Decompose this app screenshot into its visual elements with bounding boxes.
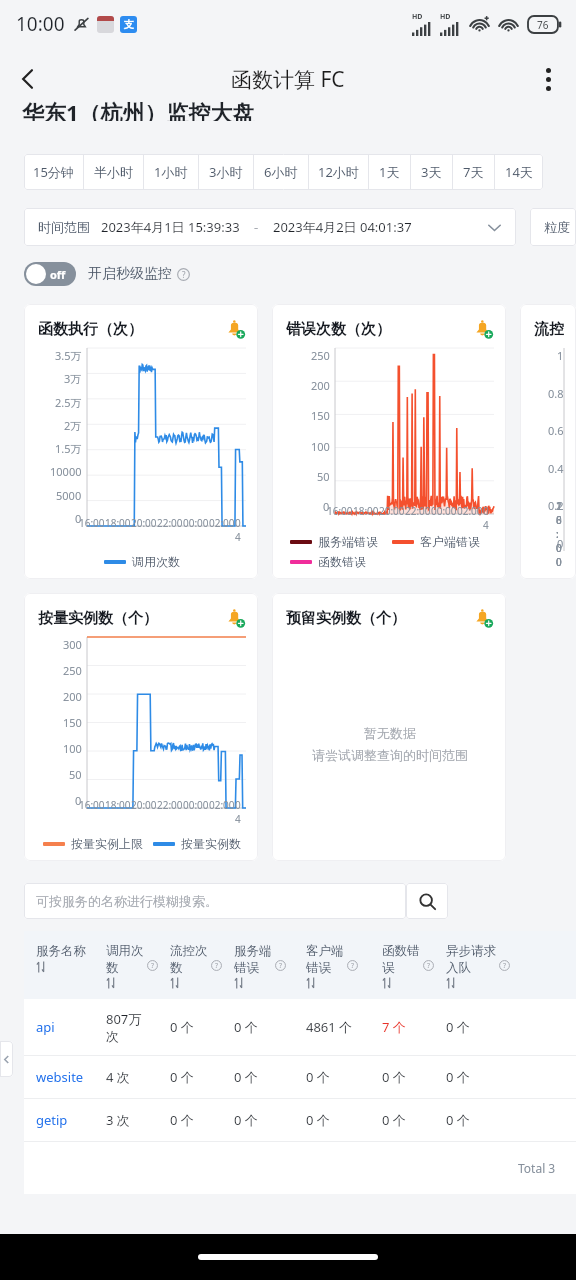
staticText: 200 xyxy=(63,689,82,704)
staticText: 0.8 xyxy=(548,386,564,401)
button[interactable]: 粒度 xyxy=(530,208,576,246)
staticText: 807万 次 xyxy=(106,1010,142,1045)
button[interactable]: Create alarm xyxy=(224,318,246,340)
staticText: 0 个 xyxy=(306,1111,330,1129)
staticText: 02:00 xyxy=(209,516,235,530)
button[interactable]: api xyxy=(24,999,576,1055)
staticText: 0 个 xyxy=(170,1111,194,1129)
staticText: 0.2 xyxy=(548,498,564,513)
staticText: 0 个 xyxy=(170,1068,194,1086)
staticText: 12小时 xyxy=(318,163,359,181)
staticText: 00:00 xyxy=(183,516,209,530)
staticText: 0 个 xyxy=(446,1068,470,1086)
staticText: getip xyxy=(36,1111,68,1129)
button[interactable]: 客户端 错误 xyxy=(298,943,374,987)
staticText: 7天 xyxy=(463,163,484,181)
staticText: 函数计算 FC xyxy=(231,65,345,94)
staticText: 200 xyxy=(311,378,330,393)
staticText: 4 次 xyxy=(106,1068,130,1086)
staticText: 3万 xyxy=(64,371,82,386)
button[interactable]: Collapse panel xyxy=(0,1041,13,1077)
staticText: 00:00 xyxy=(431,504,457,518)
staticText: 22:00 xyxy=(157,798,183,812)
button[interactable]: 服务端 错误 xyxy=(226,943,298,987)
staticText: ? xyxy=(182,269,186,280)
button[interactable]: 异步请求 入队 xyxy=(438,943,512,987)
button[interactable]: 预留实例数（个） xyxy=(272,593,506,861)
staticText: - xyxy=(254,218,259,236)
button[interactable]: 半小时 xyxy=(84,154,143,190)
button[interactable]: 15分钟 xyxy=(24,154,83,190)
button[interactable]: 3小时 xyxy=(199,154,253,190)
staticText: 0 个 xyxy=(446,1111,470,1129)
button[interactable]: 服务名称 xyxy=(24,943,98,971)
staticText: 14天 xyxy=(505,163,533,181)
staticText: 16:00 xyxy=(79,516,105,530)
button[interactable]: 函数执行（次） xyxy=(24,304,258,579)
button[interactable]: Back xyxy=(0,51,56,107)
staticText: 04 xyxy=(235,798,238,826)
staticText: off xyxy=(50,267,66,282)
button[interactable]: 函数错 误 xyxy=(374,943,438,987)
staticText: 0 个 xyxy=(306,1068,330,1086)
staticText: 1小时 xyxy=(154,163,188,181)
button[interactable]: 1天 xyxy=(369,154,410,190)
button[interactable]: 14天 xyxy=(495,154,543,190)
button[interactable]: getip xyxy=(24,1099,576,1141)
staticText: 10000 xyxy=(50,464,82,479)
button[interactable]: 6小时 xyxy=(254,154,308,190)
staticText: website xyxy=(36,1068,84,1086)
staticText: 时间范围 xyxy=(38,219,90,235)
staticText: 04 xyxy=(235,516,238,544)
button[interactable]: 流控 xyxy=(520,304,576,579)
staticText: ? xyxy=(503,961,507,971)
staticText: 开启秒级监控 xyxy=(88,265,172,283)
staticText: 6小时 xyxy=(264,163,298,181)
staticText: ? xyxy=(351,961,355,971)
staticText: 22:00 xyxy=(405,504,431,518)
staticText: 支 xyxy=(124,18,134,31)
staticText: 76 xyxy=(537,18,549,32)
staticText: 2023年4月1日 15:39:33 xyxy=(101,218,240,236)
staticText: 流控次 数 xyxy=(170,943,208,975)
staticText: 4861 个 xyxy=(306,1018,353,1036)
staticText: 16:00 xyxy=(327,504,353,518)
staticText: 0 个 xyxy=(234,1068,258,1086)
staticText: 20:00 xyxy=(131,516,157,530)
staticText: 2万 xyxy=(64,418,82,433)
button[interactable]: Search xyxy=(406,883,448,919)
button[interactable]: More options xyxy=(520,51,576,107)
button[interactable]: 7天 xyxy=(453,154,494,190)
staticText: 请尝试调整查询的时间范围 xyxy=(312,747,468,763)
staticText: 0 个 xyxy=(234,1018,258,1036)
button[interactable]: 12小时 xyxy=(309,154,368,190)
button[interactable]: 调用次 数 xyxy=(98,943,162,987)
button[interactable]: 按量实例数（个） xyxy=(24,593,258,861)
staticText: HD xyxy=(412,12,423,22)
staticText: 5000 xyxy=(56,488,82,503)
button[interactable]: website xyxy=(24,1056,576,1098)
staticText: HD xyxy=(440,12,451,22)
staticText: 0 个 xyxy=(234,1111,258,1129)
staticText: 函数错 误 xyxy=(382,943,420,975)
button[interactable]: 流控次 数 xyxy=(162,943,226,987)
staticText: 调用次 数 xyxy=(106,943,144,975)
staticText: 100 xyxy=(63,741,82,756)
button[interactable]: 3天 xyxy=(411,154,452,190)
staticText: 02:00 xyxy=(209,798,235,812)
staticText: 1 xyxy=(557,348,564,363)
staticText: 100 xyxy=(311,439,330,454)
button[interactable]: Create alarm xyxy=(472,318,494,340)
staticText: 0 xyxy=(75,511,82,526)
button[interactable]: 1小时 xyxy=(144,154,198,190)
button[interactable]: 可按服务的名称进行模糊搜索。 xyxy=(24,883,406,919)
button[interactable]: Create alarm xyxy=(472,607,494,629)
button[interactable]: Create alarm xyxy=(224,607,246,629)
button[interactable]: 时间范围 xyxy=(24,208,516,246)
staticText: 粒度 xyxy=(544,219,570,235)
staticText: ? xyxy=(427,961,431,971)
button[interactable]: Enable second-level monitoring xyxy=(24,262,76,286)
staticText: 暂无数据 xyxy=(364,725,416,741)
button[interactable]: 错误次数（次） xyxy=(272,304,506,579)
staticText: 函数错误 xyxy=(318,554,366,569)
